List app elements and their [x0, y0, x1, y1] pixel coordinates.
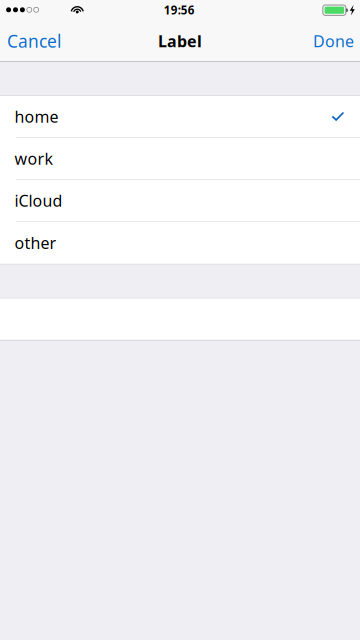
staticText: 19:56 [164, 2, 195, 18]
button[interactable]: Cancel [0, 21, 71, 61]
button[interactable]: Done [303, 21, 360, 61]
button[interactable]: home [0, 96, 360, 138]
staticText: Label [158, 30, 202, 52]
staticText: home [14, 106, 58, 127]
button[interactable]: other [0, 222, 360, 264]
button[interactable]: iCloud [0, 180, 360, 222]
staticText: Done [313, 30, 354, 52]
staticText: Cancel [7, 29, 61, 52]
button[interactable]: work [0, 138, 360, 180]
staticText: other [14, 232, 56, 253]
staticText: work [14, 148, 53, 169]
staticText: iCloud [14, 190, 62, 211]
